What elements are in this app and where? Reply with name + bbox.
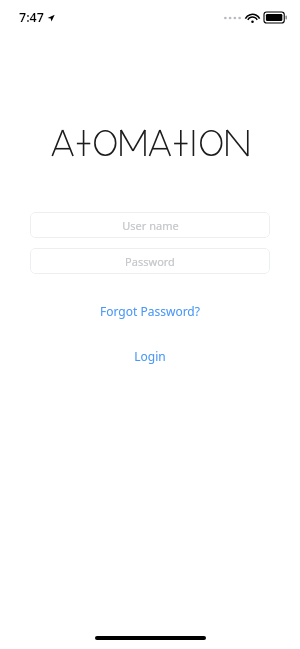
staticText: 7:47 [19,9,44,26]
staticText: User name [122,218,179,233]
button[interactable]: Forgot Password? [0,298,300,324]
button[interactable]: Login [0,343,300,369]
staticText: Forgot Password? [100,303,200,319]
staticText: Login [134,348,166,364]
button[interactable]: User name [30,212,270,238]
staticText: Password [125,254,175,269]
button[interactable]: Password [30,248,270,274]
